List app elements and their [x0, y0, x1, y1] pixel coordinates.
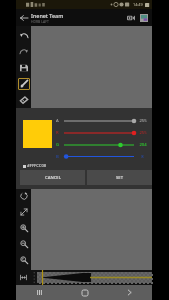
button[interactable]: Reset zoom: [16, 252, 31, 268]
staticText: #FFFCC08: [27, 163, 47, 169]
button[interactable]: Undo: [16, 28, 31, 44]
button[interactable]: Save: [16, 60, 31, 76]
staticText: CANCEL: [45, 175, 61, 181]
button[interactable]: Zoom in: [16, 220, 31, 236]
button[interactable]: Back: [107, 285, 152, 300]
button[interactable]: B: [64, 151, 134, 162]
button[interactable]: R: [64, 127, 134, 139]
button[interactable]: Redo: [16, 44, 31, 60]
button[interactable]: Brush: [16, 76, 31, 92]
button[interactable]: Home: [62, 285, 107, 300]
button[interactable]: Gallery: [138, 12, 150, 24]
staticText: 255: [139, 118, 147, 124]
staticText: 14:49: [133, 2, 143, 7]
staticText: 255: [139, 130, 147, 136]
button[interactable]: Fit to screen: [16, 204, 31, 220]
staticText: G: [56, 142, 60, 148]
button[interactable]: A: [64, 115, 134, 127]
staticText: Inenet Team: [31, 12, 64, 19]
button[interactable]: Rotate: [16, 188, 31, 204]
staticText: A: [56, 118, 59, 124]
button[interactable]: CANCEL: [20, 170, 85, 185]
staticText: R: [56, 130, 59, 136]
button[interactable]: Brush size: [37, 272, 152, 283]
button[interactable]: Zoom out: [16, 236, 31, 252]
button[interactable]: Eraser: [16, 92, 31, 108]
staticText: SET: [116, 175, 123, 181]
staticText: HDRB LAFT: [31, 19, 49, 24]
button[interactable]: G: [64, 139, 134, 151]
button[interactable]: SET: [87, 170, 152, 185]
button[interactable]: Video call: [125, 12, 137, 24]
staticText: 204: [139, 142, 147, 148]
button[interactable]: Back: [18, 12, 30, 24]
button[interactable]: Recent apps: [16, 285, 62, 300]
button[interactable]: Brush width: [16, 270, 31, 285]
staticText: B: [56, 154, 59, 160]
staticText: 8: [141, 154, 144, 160]
